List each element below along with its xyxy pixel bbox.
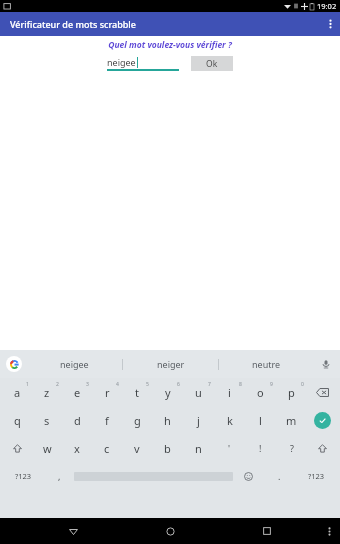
- button[interactable]: Recent apps: [254, 518, 280, 544]
- staticText: w: [43, 441, 52, 456]
- button[interactable]: r: [92, 378, 122, 406]
- staticText: .: [278, 470, 281, 482]
- button[interactable]: h: [152, 406, 183, 434]
- staticText: neiger: [157, 358, 185, 370]
- staticText: 1: [26, 381, 29, 388]
- staticText: 2: [56, 381, 59, 388]
- button[interactable]: x: [62, 434, 92, 462]
- button[interactable]: u: [183, 378, 214, 406]
- staticText: 9: [270, 381, 273, 388]
- button[interactable]: ?123: [2, 462, 44, 490]
- button[interactable]: ?123: [295, 462, 338, 490]
- button[interactable]: .: [264, 462, 295, 490]
- staticText: o: [257, 385, 264, 400]
- button[interactable]: Back: [60, 518, 86, 544]
- button[interactable]: s: [32, 406, 62, 434]
- button[interactable]: l: [245, 406, 276, 434]
- button[interactable]: Backspace: [307, 378, 338, 406]
- button[interactable]: f: [92, 406, 122, 434]
- staticText: 3: [86, 381, 89, 388]
- button[interactable]: c: [92, 434, 122, 462]
- staticText: Vérificateur de mots scrabble: [10, 18, 136, 30]
- staticText: 19:02: [317, 1, 337, 11]
- staticText: e: [74, 385, 81, 400]
- staticText: b: [164, 441, 171, 456]
- button[interactable]: Home: [157, 518, 183, 544]
- button[interactable]: neigee: [26, 350, 122, 378]
- staticText: 8: [239, 381, 242, 388]
- button[interactable]: a: [2, 378, 32, 406]
- button[interactable]: j: [183, 406, 214, 434]
- button[interactable]: w: [32, 434, 62, 462]
- staticText: k: [227, 413, 233, 428]
- staticText: 7: [208, 381, 211, 388]
- staticText: m: [286, 413, 297, 428]
- button[interactable]: t: [122, 378, 152, 406]
- button[interactable]: More options: [318, 518, 340, 544]
- button[interactable]: Emoji: [233, 462, 264, 490]
- staticText: l: [259, 413, 262, 428]
- button[interactable]: Google: [6, 356, 22, 372]
- staticText: 5: [146, 381, 149, 388]
- button[interactable]: Shift: [2, 434, 32, 462]
- staticText: j: [197, 413, 200, 428]
- button[interactable]: Enter: [307, 406, 338, 434]
- staticText: p: [288, 385, 295, 400]
- staticText: f: [105, 413, 109, 428]
- button[interactable]: i: [214, 378, 245, 406]
- button[interactable]: neiger: [123, 350, 218, 378]
- staticText: Ok: [206, 58, 218, 70]
- staticText: i: [228, 385, 231, 400]
- staticText: y: [165, 385, 171, 400]
- staticText: neutre: [252, 358, 281, 370]
- button[interactable]: q: [2, 406, 32, 434]
- staticText: ': [228, 442, 231, 454]
- staticText: ,: [58, 470, 61, 482]
- button[interactable]: Ok: [191, 56, 233, 71]
- button[interactable]: ,: [44, 462, 74, 490]
- button[interactable]: o: [245, 378, 276, 406]
- staticText: h: [164, 413, 171, 428]
- staticText: c: [104, 441, 110, 456]
- button[interactable]: ': [214, 434, 245, 462]
- button[interactable]: n: [183, 434, 214, 462]
- staticText: z: [44, 385, 50, 400]
- staticText: ?: [290, 442, 294, 454]
- button[interactable]: b: [152, 434, 183, 462]
- staticText: 0: [301, 381, 304, 388]
- button[interactable]: y: [152, 378, 183, 406]
- button[interactable]: k: [214, 406, 245, 434]
- staticText: a: [14, 385, 21, 400]
- button[interactable]: neigee: [107, 56, 179, 71]
- button[interactable]: m: [276, 406, 307, 434]
- button[interactable]: p: [276, 378, 307, 406]
- staticText: s: [44, 413, 50, 428]
- button[interactable]: More options: [320, 12, 340, 36]
- staticText: n: [195, 441, 202, 456]
- button[interactable]: neutre: [219, 350, 314, 378]
- staticText: g: [134, 413, 141, 428]
- staticText: 4: [116, 381, 119, 388]
- button[interactable]: v: [122, 434, 152, 462]
- staticText: d: [74, 413, 81, 428]
- button[interactable]: d: [62, 406, 92, 434]
- staticText: neigee: [60, 358, 89, 370]
- staticText: v: [134, 441, 140, 456]
- staticText: r: [105, 385, 110, 400]
- button[interactable]: Voice input: [318, 356, 334, 372]
- staticText: u: [195, 385, 202, 400]
- staticText: t: [135, 385, 139, 400]
- staticText: Quel mot voulez-vous vérifier ?: [0, 39, 340, 51]
- staticText: ?123: [15, 471, 32, 481]
- button[interactable]: !: [245, 434, 276, 462]
- button[interactable]: Shift: [307, 434, 338, 462]
- button[interactable]: ?: [276, 434, 307, 462]
- button[interactable]: e: [62, 378, 92, 406]
- staticText: !: [259, 442, 262, 454]
- button[interactable]: z: [32, 378, 62, 406]
- button[interactable]: g: [122, 406, 152, 434]
- button[interactable]: Space: [74, 462, 233, 490]
- staticText: x: [74, 441, 80, 456]
- staticText: 6: [177, 381, 180, 388]
- staticText: neigee: [107, 56, 136, 68]
